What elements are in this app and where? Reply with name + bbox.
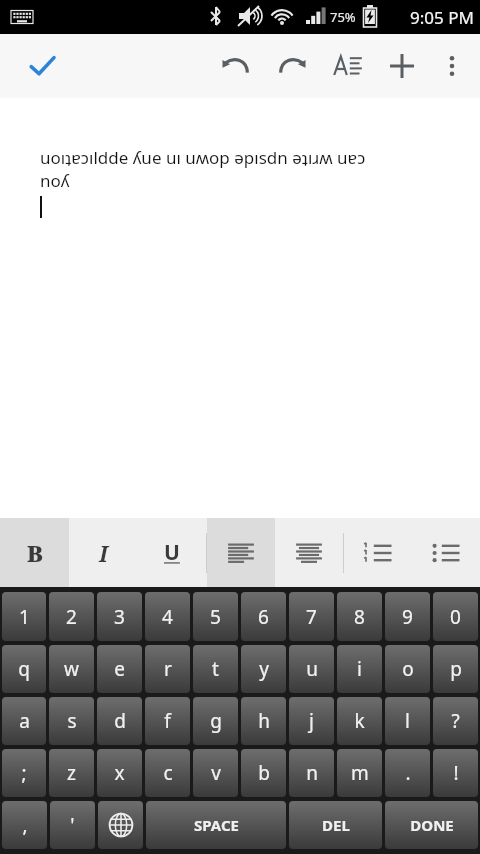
button[interactable]: k [337,697,382,745]
button[interactable]: d [97,697,142,745]
staticText: B [27,538,43,568]
staticText: e [114,656,125,682]
button[interactable]: w [49,645,94,693]
staticText: p [450,656,462,682]
button[interactable]: i [337,645,382,693]
button[interactable]: Italic [69,518,138,587]
button[interactable]: More options [428,42,476,90]
button[interactable]: , [2,801,47,849]
staticText: 5 [210,604,221,630]
button[interactable]: . [385,749,430,797]
button[interactable]: 4 [145,592,190,641]
staticText: 6 [258,604,269,630]
staticText: m [351,760,369,786]
button[interactable]: t [193,645,238,693]
button[interactable]: 2 [49,592,94,641]
button[interactable]: Numbered list [344,518,412,587]
button[interactable]: Redo [268,42,316,90]
staticText: ; [21,760,27,786]
button[interactable]: Change keyboard [98,801,143,849]
button[interactable]: e [97,645,142,693]
button[interactable]: Done [18,42,66,90]
button[interactable]: x [97,749,142,797]
staticText: w [64,656,79,682]
staticText: , [22,812,28,838]
staticText: 2 [66,604,77,630]
staticText: h [258,708,270,734]
staticText: . [405,760,411,786]
button[interactable]: c [145,749,190,797]
staticText: q [18,656,30,682]
staticText: a [19,708,30,734]
staticText: y [259,656,269,682]
button[interactable]: j [289,697,334,745]
button[interactable]: a [2,697,46,745]
staticText: f [164,708,171,734]
button[interactable]: h [241,697,286,745]
button[interactable]: ! [433,749,478,797]
button[interactable]: Underline [138,518,206,587]
button[interactable]: 1 [2,592,46,641]
button[interactable]: 5 [193,592,238,641]
button[interactable]: SPACE [146,801,286,849]
staticText: ' [70,812,75,838]
button[interactable]: Align center [275,518,343,587]
staticText: 0 [450,604,461,630]
button[interactable]: g [193,697,238,745]
button[interactable]: DEL [289,801,382,849]
staticText: 3 [114,604,125,630]
button[interactable]: 8 [337,592,382,641]
button[interactable]: Undo [212,42,260,90]
button[interactable]: ? [433,697,478,745]
button[interactable]: n [289,749,334,797]
staticText: s [67,708,77,734]
staticText: uoıʇɐɔıldde ʎue uı uʍop ǝpısdn ǝʇıɹʍ uɐɔ [40,146,366,169]
button[interactable]: 6 [241,592,286,641]
staticText: v [211,760,221,786]
button[interactable]: l [385,697,430,745]
staticText: DONE [410,815,454,835]
staticText: ? [451,708,460,734]
button[interactable]: 0 [433,592,478,641]
staticText: r [164,656,172,682]
button[interactable]: DONE [385,801,478,849]
button[interactable]: p [433,645,478,693]
button[interactable]: z [49,749,94,797]
button[interactable]: ; [2,749,46,797]
button[interactable]: 7 [289,592,334,641]
button[interactable]: Add [378,42,426,90]
staticText: I [99,538,108,568]
button[interactable]: u [289,645,334,693]
button[interactable]: q [2,645,46,693]
staticText: k [354,708,365,734]
button[interactable]: Align left [207,518,275,587]
button[interactable]: b [241,749,286,797]
staticText: z [67,760,76,786]
button[interactable]: 9 [385,592,430,641]
staticText: 7 [306,604,317,630]
button[interactable]: m [337,749,382,797]
button[interactable]: ' [50,801,95,849]
staticText: o [402,656,414,682]
staticText: 1 [19,604,30,630]
button[interactable]: y [241,645,286,693]
button[interactable]: f [145,697,190,745]
button[interactable]: r [145,645,190,693]
staticText: d [114,708,126,734]
staticText: g [210,708,222,734]
button[interactable]: v [193,749,238,797]
staticText: t [212,656,219,682]
staticText: x [114,760,125,786]
staticText: j [309,708,314,734]
staticText: l [405,708,410,734]
staticText: 8 [354,604,365,630]
staticText: 9 [402,604,413,630]
button[interactable]: Text formatting [324,42,372,90]
button[interactable]: s [49,697,94,745]
button[interactable]: 3 [97,592,142,641]
button[interactable]: Bulleted list [412,518,480,587]
button[interactable]: o [385,645,430,693]
staticText: 75% [330,8,356,26]
staticText: i [357,656,362,682]
button[interactable]: Bold [0,518,69,587]
